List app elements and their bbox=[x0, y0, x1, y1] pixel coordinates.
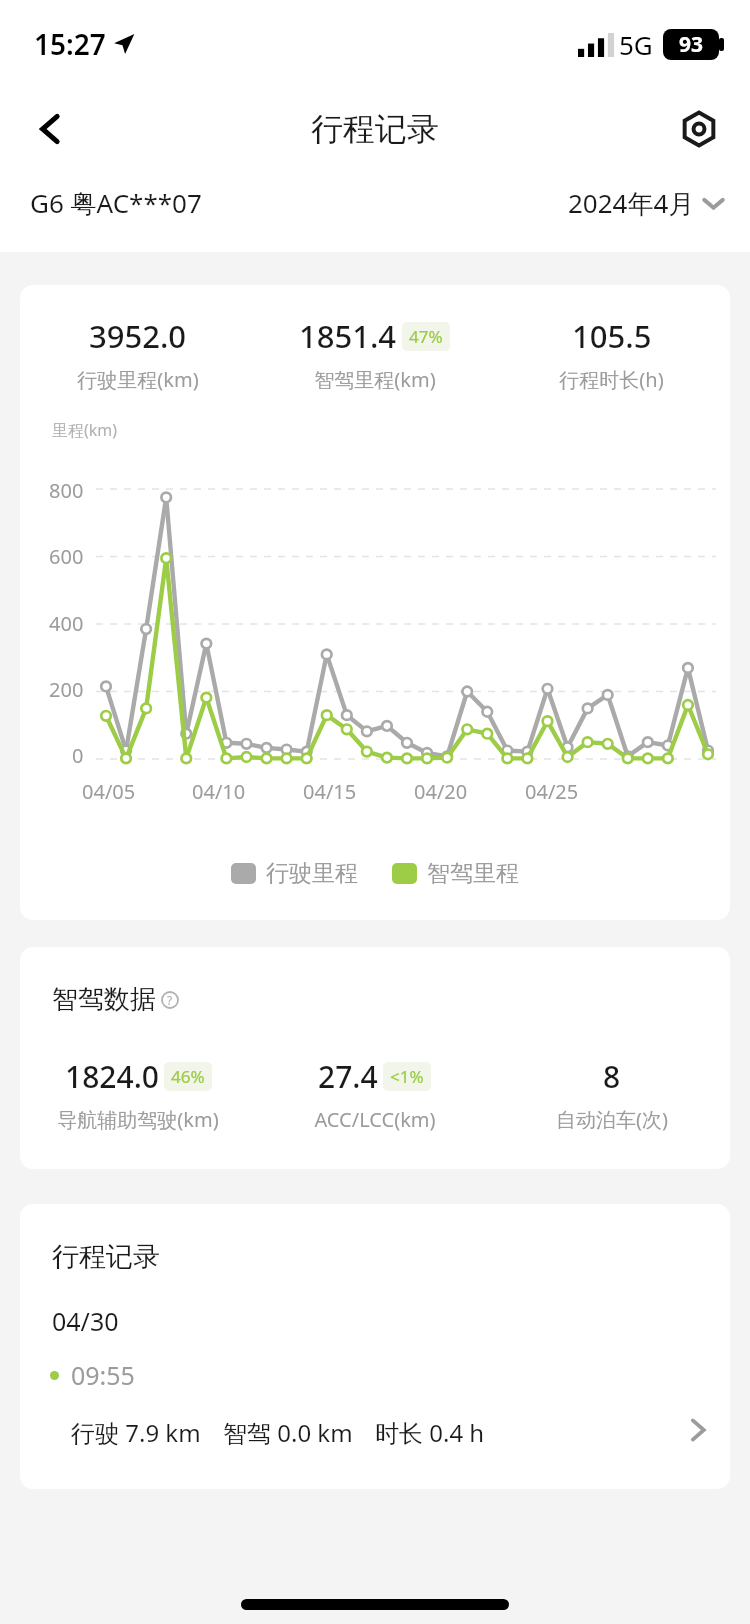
staticText: ? bbox=[167, 992, 173, 1008]
staticText: 04/05 bbox=[82, 778, 136, 805]
staticText: 8 bbox=[603, 1056, 621, 1097]
staticText: 04/10 bbox=[192, 778, 246, 805]
staticText: 智驾数据 bbox=[52, 983, 156, 1016]
staticText: 行驶里程(km) bbox=[77, 366, 199, 393]
staticText: 行程时长(h) bbox=[559, 366, 664, 393]
button[interactable]: 09:55 bbox=[20, 1358, 730, 1449]
staticText: 09:55 bbox=[71, 1358, 135, 1392]
staticText: 时长 0.4 h bbox=[375, 1416, 485, 1449]
staticText: 5G bbox=[619, 27, 653, 62]
staticText: 2024年4月 bbox=[568, 185, 695, 221]
staticText: 47% bbox=[409, 325, 443, 348]
staticText: 400 bbox=[49, 610, 84, 637]
button[interactable]: Back bbox=[22, 100, 80, 158]
staticText: 行驶 7.9 km bbox=[71, 1416, 201, 1449]
staticText: 04/30 bbox=[52, 1304, 119, 1338]
staticText: 04/25 bbox=[525, 778, 579, 805]
staticText: 智驾里程(km) bbox=[314, 366, 436, 393]
staticText: 智驾里程 bbox=[427, 859, 519, 888]
staticText: 3952.0 bbox=[89, 315, 187, 357]
staticText: G6 粤AC***07 bbox=[30, 185, 202, 221]
staticText: 0 bbox=[72, 742, 84, 769]
staticText: 200 bbox=[49, 676, 84, 703]
staticText: 行程记录 bbox=[311, 109, 439, 149]
staticText: <1% bbox=[390, 1065, 424, 1088]
button[interactable]: 2024年4月 bbox=[564, 179, 728, 227]
staticText: 行驶里程 bbox=[266, 859, 358, 888]
staticText: 800 bbox=[49, 477, 84, 504]
staticText: 600 bbox=[49, 543, 84, 570]
staticText: 93 bbox=[679, 30, 704, 59]
staticText: 智驾 0.0 km bbox=[223, 1416, 353, 1449]
staticText: 27.4 bbox=[318, 1056, 378, 1097]
staticText: 105.5 bbox=[572, 315, 652, 357]
staticText: 行程记录 bbox=[52, 1240, 160, 1274]
staticText: 里程(km) bbox=[52, 419, 118, 441]
staticText: 04/20 bbox=[414, 778, 468, 805]
staticText: 04/15 bbox=[303, 778, 357, 805]
button[interactable]: Settings bbox=[670, 100, 728, 158]
staticText: ACC/LCC(km) bbox=[314, 1106, 436, 1133]
staticText: 1824.0 bbox=[65, 1056, 159, 1097]
staticText: 导航辅助驾驶(km) bbox=[57, 1106, 219, 1133]
staticText: 1851.4 bbox=[299, 315, 397, 357]
staticText: 15:27 bbox=[34, 25, 106, 63]
staticText: 自动泊车(次) bbox=[556, 1106, 668, 1133]
staticText: 46% bbox=[171, 1065, 205, 1088]
